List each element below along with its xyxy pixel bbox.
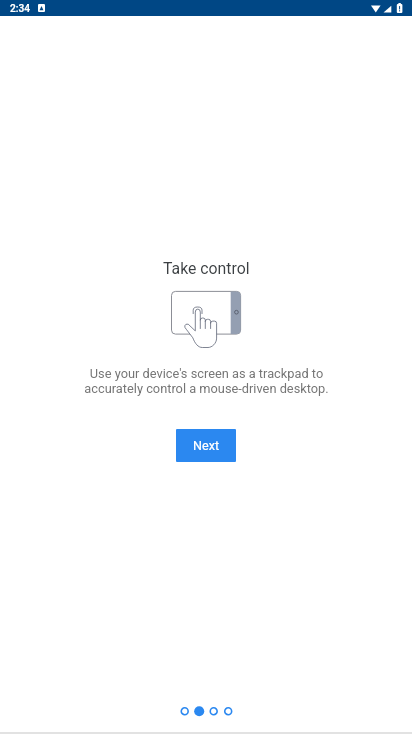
staticText: Next	[193, 438, 220, 453]
staticText: Use your device's screen as a trackpad t…	[84, 366, 329, 396]
staticText: 2:34	[10, 3, 31, 15]
staticText: Take control	[163, 259, 250, 278]
button[interactable]: Page 2 of 4	[0, 699, 412, 723]
button[interactable]: Next	[176, 429, 236, 462]
